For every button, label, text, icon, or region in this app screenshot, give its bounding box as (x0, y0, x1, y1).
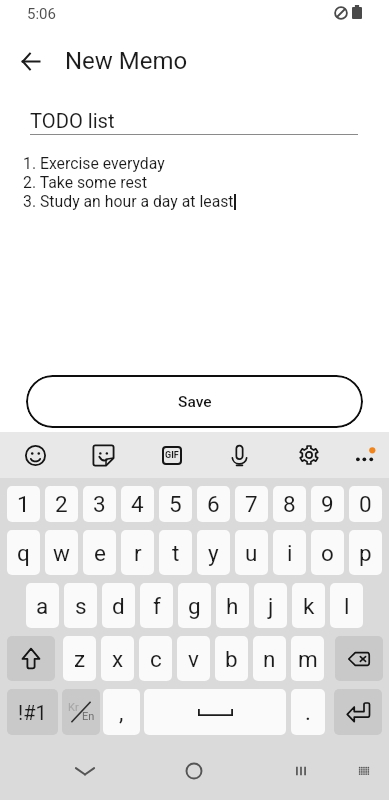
button[interactable]: 5 (159, 486, 192, 522)
staticText: TODO list (30, 109, 115, 133)
staticText: b (225, 646, 238, 672)
button[interactable]: w (45, 530, 78, 575)
button[interactable]: 4 (121, 486, 154, 522)
staticText: v (188, 646, 199, 672)
button[interactable]: Back (9, 39, 53, 83)
button[interactable]: q (7, 530, 40, 575)
button[interactable]: s (64, 583, 97, 628)
staticText: f (153, 593, 161, 619)
staticText: 7 (245, 491, 258, 517)
button[interactable]: 6 (197, 486, 230, 522)
button[interactable]: 3 (83, 486, 116, 522)
button[interactable]: Language (62, 689, 100, 735)
button[interactable]: !#1 (7, 689, 58, 735)
button[interactable]: 0 (349, 486, 382, 522)
staticText: h (226, 593, 239, 619)
button[interactable]: u (235, 530, 268, 575)
staticText: !#1 (18, 701, 47, 724)
button[interactable]: , (103, 689, 140, 735)
staticText: . (305, 699, 311, 725)
button[interactable]: l (330, 583, 363, 628)
button[interactable]: Space (144, 689, 286, 735)
button[interactable]: k (292, 583, 325, 628)
button[interactable]: m (291, 636, 324, 681)
button[interactable]: r (121, 530, 154, 575)
button[interactable]: 2 (45, 486, 78, 522)
button[interactable]: y (197, 530, 230, 575)
button[interactable]: 9 (311, 486, 344, 522)
staticText: w (53, 540, 70, 566)
button[interactable]: p (349, 530, 382, 575)
button[interactable]: c (139, 636, 172, 681)
button[interactable]: Shift (7, 636, 55, 681)
staticText: r (134, 540, 142, 566)
staticText: y (208, 540, 219, 566)
staticText: c (150, 646, 162, 672)
button[interactable]: Enter (334, 689, 382, 735)
staticText: 3. Study an hour a day at least (23, 192, 234, 211)
button[interactable]: Recents (279, 749, 323, 793)
button[interactable]: Backspace (335, 636, 383, 681)
staticText: x (112, 646, 124, 672)
staticText: l (344, 593, 350, 619)
button[interactable]: Sticker (82, 434, 124, 476)
staticText: , (119, 699, 124, 725)
button[interactable]: b (215, 636, 248, 681)
button[interactable]: j (254, 583, 287, 628)
staticText: 4 (131, 491, 144, 517)
button[interactable]: . (291, 689, 325, 735)
staticText: d (112, 593, 125, 619)
staticText: p (359, 540, 372, 566)
button[interactable]: d (102, 583, 135, 628)
button[interactable]: t (159, 530, 192, 575)
button[interactable]: x (101, 636, 134, 681)
staticText: 8 (283, 491, 296, 517)
staticText: 9 (321, 491, 334, 517)
staticText: i (287, 540, 293, 566)
button[interactable]: Voice input (218, 434, 260, 476)
staticText: m (298, 646, 318, 672)
staticText: Save (178, 393, 212, 411)
button[interactable]: GIF (151, 434, 193, 476)
staticText: z (74, 646, 86, 672)
staticText: 6 (207, 491, 220, 517)
button[interactable]: h (216, 583, 249, 628)
button[interactable]: Save (26, 375, 363, 428)
button[interactable]: i (273, 530, 306, 575)
button[interactable]: a (26, 583, 59, 628)
staticText: a (36, 593, 49, 619)
staticText: n (263, 646, 276, 672)
button[interactable]: f (140, 583, 173, 628)
button[interactable]: o (311, 530, 344, 575)
staticText: q (17, 540, 30, 566)
button[interactable]: g (178, 583, 211, 628)
staticText: 5 (169, 491, 182, 517)
staticText: u (245, 540, 258, 566)
staticText: o (321, 540, 334, 566)
staticText: 1 (17, 491, 30, 517)
staticText: 0 (359, 491, 372, 517)
staticText: g (188, 593, 201, 619)
button[interactable]: 8 (273, 486, 306, 522)
button[interactable]: Settings (288, 434, 330, 476)
button[interactable]: z (63, 636, 96, 681)
staticText: En (82, 710, 95, 723)
button[interactable]: More options (345, 434, 387, 476)
button[interactable]: n (253, 636, 286, 681)
button[interactable]: v (177, 636, 210, 681)
staticText: 5:06 (27, 5, 56, 23)
staticText: t (172, 540, 180, 566)
button[interactable]: e (83, 530, 116, 575)
staticText: s (75, 593, 87, 619)
staticText: New Memo (65, 47, 188, 75)
button[interactable]: Home (172, 749, 216, 793)
button[interactable]: Emoji (14, 434, 56, 476)
button[interactable]: 7 (235, 486, 268, 522)
button[interactable]: Hide keyboard (63, 749, 107, 793)
staticText: 1. Exercise everyday (23, 154, 165, 173)
button[interactable]: Change keyboard (342, 749, 386, 793)
staticText: 2 (55, 491, 68, 517)
staticText: Kr (68, 701, 79, 714)
staticText: GIF (165, 450, 179, 461)
button[interactable]: 1 (7, 486, 40, 522)
